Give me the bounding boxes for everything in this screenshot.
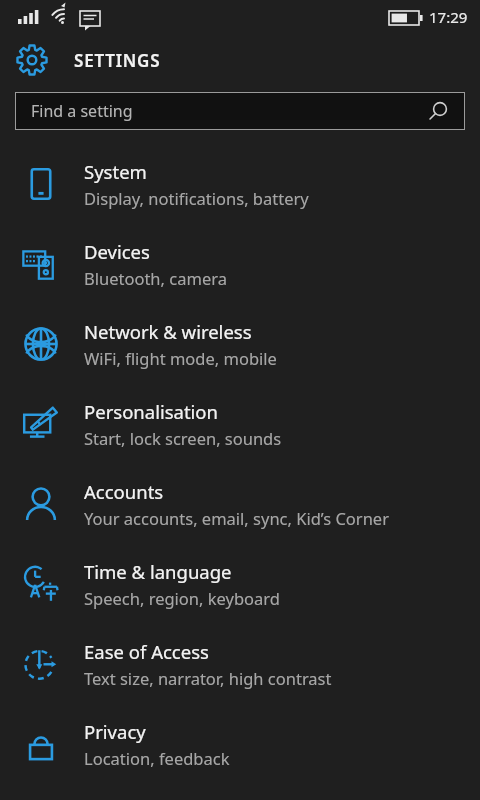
staticText: Text size, narrator, high contrast (84, 667, 332, 689)
staticText: Network & wireless (84, 319, 252, 344)
button[interactable]: Network & wireless (0, 304, 480, 384)
staticText: SETTINGS (74, 49, 161, 72)
staticText: Find a setting (31, 100, 133, 122)
button[interactable]: Personalisation (0, 384, 480, 464)
staticText: 17:29 (429, 7, 468, 27)
staticText: Your accounts, email, sync, Kid’s Corner (84, 507, 389, 529)
button[interactable]: Devices (0, 224, 480, 304)
staticText: Start, lock screen, sounds (84, 427, 282, 449)
staticText: Accounts (84, 479, 164, 504)
staticText: Privacy (84, 719, 146, 744)
button[interactable]: Settings (14, 42, 50, 78)
staticText: Speech, region, keyboard (84, 587, 280, 609)
button[interactable]: Privacy (0, 704, 480, 784)
button[interactable]: Ease of Access (0, 624, 480, 704)
staticText: Ease of Access (84, 639, 209, 664)
staticText: Bluetooth, camera (84, 267, 227, 289)
staticText: Location, feedback (84, 747, 230, 769)
button[interactable]: Accounts (0, 464, 480, 544)
staticText: WiFi, flight mode, mobile (84, 347, 277, 369)
staticText: Personalisation (84, 399, 218, 424)
staticText: Devices (84, 239, 150, 264)
button[interactable]: Time & language (0, 544, 480, 624)
staticText: Display, notifications, battery (84, 187, 309, 209)
button[interactable]: Find a setting (15, 92, 465, 130)
button[interactable]: System (0, 144, 480, 224)
staticText: System (84, 159, 147, 184)
staticText: Time & language (84, 559, 232, 584)
